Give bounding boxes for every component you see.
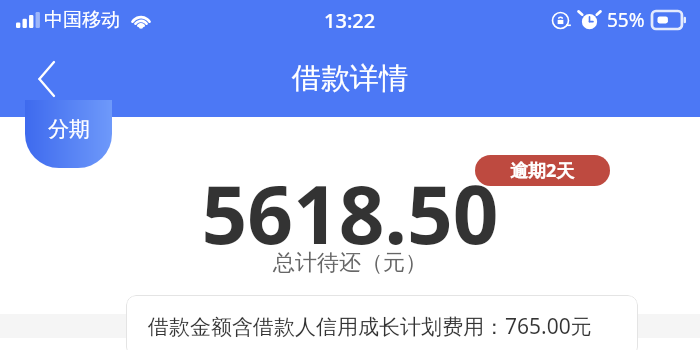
button[interactable]: Back [20,52,74,106]
other: Rotation lock [551,11,570,30]
other: Battery 55 percent [652,11,686,29]
staticText: 13:22 [324,7,376,34]
button[interactable]: 逾期2天 [475,155,610,186]
staticText: 5618.50 [0,158,700,267]
staticText: 分期 [48,116,90,142]
button[interactable]: 借款金额含借款人信用成长计划费用：765.00元 [126,295,638,350]
staticText: 逾期2天 [510,158,575,183]
staticText: 总计待还（元） [0,249,700,277]
button[interactable]: 分期 [25,100,112,168]
staticText: 借款金额含借款人信用成长计划费用：765.00元 [148,312,592,341]
staticText: 借款详情 [292,60,408,97]
staticText: 中国移动 [44,8,120,32]
other: Alarm [580,11,599,30]
staticText: 55% [607,7,645,33]
